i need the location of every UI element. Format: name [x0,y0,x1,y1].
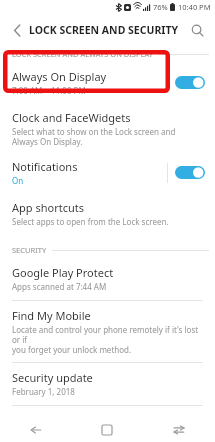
button[interactable]: Search [187,20,207,40]
staticText: Always On Display [12,69,107,84]
staticText: Security update [12,370,93,385]
staticText: Find My Mobile [12,308,91,323]
button[interactable]: Notifications toggle [175,165,205,180]
button[interactable]: Security update [0,363,215,405]
staticText: 7:00 AM ~ 11:00 PM [12,85,86,96]
staticText: LOCK SCREEN AND SECURITY [29,23,179,37]
button[interactable]: Always On Display [0,62,215,103]
button[interactable]: Google Play Protect [0,258,215,300]
staticText: Clock and FaceWidgets [12,110,131,125]
staticText: February 1, 2018 [12,386,75,397]
button[interactable]: Recents [143,418,215,442]
button[interactable]: Clock and FaceWidgets [0,103,215,153]
button[interactable]: Notifications [0,153,215,193]
staticText: Select what to show on the Lock screen a… [12,126,176,147]
button[interactable]: App shortcuts [0,193,215,234]
button[interactable]: Find My Mobile [0,301,215,362]
staticText: 10:40 PM [178,2,211,12]
button[interactable]: Home [71,418,143,442]
button[interactable]: Back [0,418,71,442]
staticText: Apps scanned at 7:44 AM [12,281,107,292]
staticText: Google Play Protect [12,265,114,280]
staticText: LOCK SCREEN AND ALWAYS ON DISPLAY [12,49,153,59]
staticText: App shortcuts [12,200,84,215]
staticText: Notifications [12,159,78,174]
staticText: Select apps to open from the Lock screen… [12,216,169,227]
staticText: On [12,175,24,186]
staticText: Locate and control your phone remotely i… [12,324,205,355]
staticText: SECURITY [12,245,47,255]
button[interactable]: Always On Display toggle [175,75,205,90]
button[interactable]: Back [8,21,26,39]
staticText: 76% [153,2,168,12]
